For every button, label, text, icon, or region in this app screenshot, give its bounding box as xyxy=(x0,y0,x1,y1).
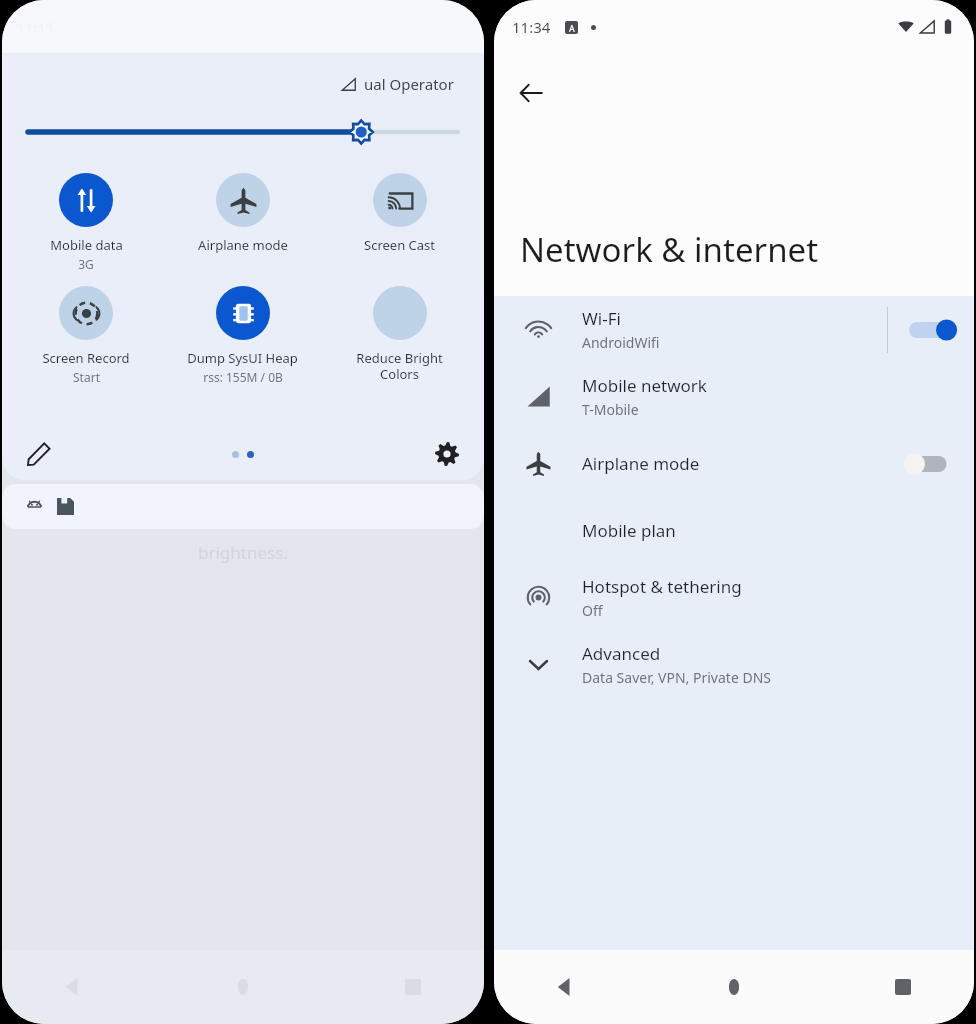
staticText: Wi-Fi xyxy=(582,307,621,330)
staticText: rss: 155M / 0B xyxy=(203,369,283,385)
button[interactable]: Edit tiles xyxy=(22,437,56,471)
button[interactable]: Airplane mode xyxy=(164,167,321,258)
button[interactable]: Airplane mode xyxy=(494,430,974,497)
button[interactable]: Home xyxy=(220,964,266,1010)
button[interactable]: Airplane mode toggle xyxy=(906,447,958,481)
staticText: Reduce Bright Colors xyxy=(356,349,443,382)
staticText: Screen Cast xyxy=(364,236,435,254)
staticText: Mobile data xyxy=(50,236,123,254)
button[interactable]: Recent apps xyxy=(880,964,926,1010)
button[interactable]: Recent apps xyxy=(390,964,436,1010)
button[interactable]: Wi-Fi toggle xyxy=(906,313,958,347)
staticText: ual Operator xyxy=(364,74,454,94)
staticText: A xyxy=(569,22,575,34)
staticText: Start xyxy=(73,369,100,385)
button[interactable]: Back xyxy=(50,964,96,1010)
staticText: AndroidWifi xyxy=(582,333,660,352)
button[interactable]: Hotspot & tethering xyxy=(494,564,974,631)
staticText: Advanced xyxy=(582,642,661,665)
staticText: Screen Record xyxy=(42,349,130,367)
button[interactable]: Mobile plan xyxy=(494,497,974,564)
button[interactable]: Wi-Fi xyxy=(494,296,974,363)
staticText: 11:34 xyxy=(512,17,551,37)
staticText: Dump SysUI Heap xyxy=(187,349,298,367)
button[interactable]: Screen Cast xyxy=(321,167,478,258)
button[interactable]: Screen Record xyxy=(8,280,164,389)
staticText: 3G xyxy=(78,256,94,272)
button[interactable]: Back xyxy=(508,70,554,116)
staticText: Hotspot & tethering xyxy=(582,575,742,598)
staticText: Data Saver, VPN, Private DNS xyxy=(582,668,771,687)
button[interactable]: Home xyxy=(711,964,757,1010)
button[interactable]: Back xyxy=(542,964,588,1010)
staticText: Airplane mode xyxy=(582,452,700,475)
button[interactable]: Mobile network xyxy=(494,363,974,430)
button[interactable]: Advanced xyxy=(494,631,974,698)
staticText: brightness. xyxy=(198,541,288,564)
staticText: Network & internet xyxy=(520,227,819,272)
button[interactable]: Settings xyxy=(430,437,464,471)
staticText: Off xyxy=(582,601,603,620)
button[interactable]: Mobile data xyxy=(8,167,164,276)
button[interactable]: Reduce Bright Colors xyxy=(321,280,478,386)
staticText: Mobile network xyxy=(582,374,707,397)
staticText: Airplane mode xyxy=(198,236,288,254)
staticText: Mobile plan xyxy=(582,519,676,542)
staticText: T-Mobile xyxy=(582,400,639,419)
button[interactable]: Dump SysUI Heap xyxy=(164,280,321,389)
